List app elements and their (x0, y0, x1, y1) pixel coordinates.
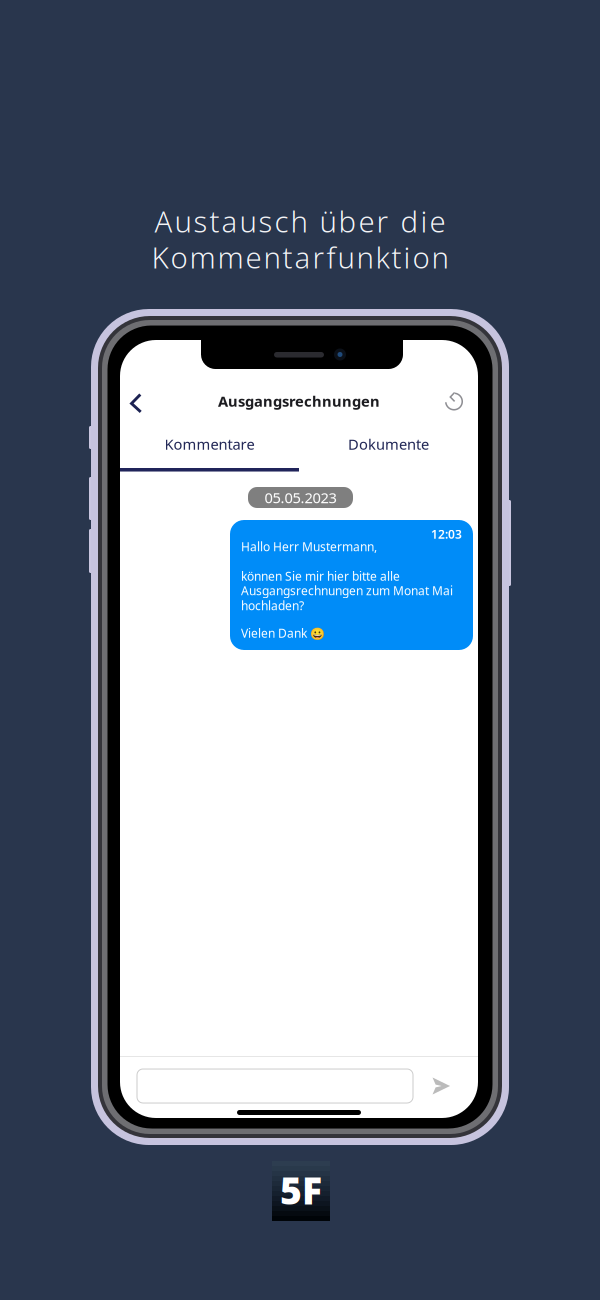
staticText: Ausgangsrechnungen zum Monat Mai (241, 582, 453, 598)
staticText: 5F (280, 1165, 322, 1215)
staticText: 12:03 (431, 526, 462, 542)
staticText: Ausgangsrechnungen (218, 391, 380, 411)
button[interactable]: Zurück (114, 386, 158, 420)
button[interactable]: Dokumente (299, 425, 478, 463)
staticText: 05.05.2023 (264, 488, 336, 507)
staticText: Austausch über die (154, 201, 445, 240)
button[interactable]: Kommentare (120, 425, 299, 463)
staticText: Dokumente (348, 434, 429, 454)
staticText: hochladen? (241, 597, 304, 613)
staticText: Kommentare (164, 434, 254, 454)
staticText: Vielen Dank 😀 (241, 625, 325, 641)
button[interactable]: Aktualisieren (432, 384, 476, 418)
staticText: Kommentarfunktion (151, 237, 448, 276)
staticText: können Sie mir hier bitte alle (241, 568, 400, 584)
staticText: Hallo Herr Mustermann, (241, 538, 377, 554)
button[interactable]: Nachricht schreiben (137, 1069, 413, 1103)
button[interactable]: Senden (423, 1075, 459, 1097)
